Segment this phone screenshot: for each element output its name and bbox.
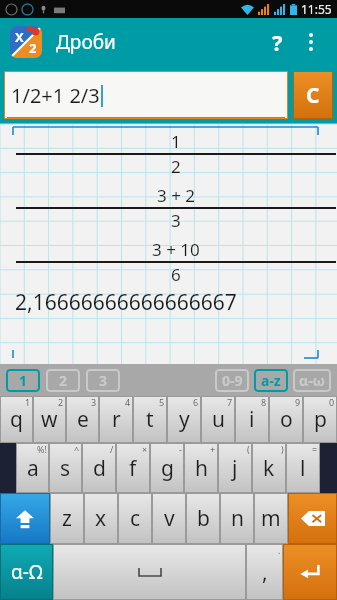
button[interactable]: y — [167, 396, 201, 443]
button[interactable]: f — [116, 443, 150, 493]
staticText: i — [249, 405, 255, 434]
staticText: ? — [272, 27, 283, 57]
button[interactable]: h — [184, 443, 218, 493]
staticText: m — [261, 504, 281, 533]
staticText: 8 — [261, 396, 267, 408]
button[interactable]: r — [99, 396, 133, 443]
staticText: c — [130, 504, 141, 533]
button[interactable]: w — [33, 396, 66, 443]
staticText: o — [280, 405, 293, 434]
staticText: s — [60, 454, 71, 483]
staticText: t — [146, 405, 154, 434]
button[interactable]: Help — [259, 24, 295, 60]
staticText: + — [210, 443, 216, 455]
staticText: w — [41, 405, 58, 434]
button[interactable]: s — [49, 443, 82, 493]
staticText: b — [197, 504, 210, 533]
button[interactable]: p — [303, 396, 337, 443]
button[interactable]: a — [16, 443, 49, 493]
button[interactable]: Backspace — [288, 493, 337, 544]
staticText: ) — [281, 443, 284, 455]
staticText: = — [312, 443, 318, 455]
staticText: 3 — [171, 209, 181, 232]
staticText: 11:55 — [301, 1, 332, 17]
button[interactable]: More options — [295, 26, 327, 58]
staticText: y — [179, 405, 190, 434]
button[interactable]: 3 — [86, 369, 120, 392]
button[interactable]: c — [118, 493, 152, 544]
button[interactable]: , — [246, 544, 283, 600]
button[interactable]: Space — [53, 544, 246, 600]
button[interactable]: 1 — [6, 369, 40, 392]
staticText: r — [112, 405, 121, 434]
staticText: 4 — [125, 396, 131, 408]
staticText: 2 — [58, 396, 64, 408]
staticText: p — [314, 405, 327, 434]
button[interactable]: e — [66, 396, 99, 443]
staticText: X — [15, 28, 24, 46]
staticText: . — [278, 544, 281, 556]
staticText: %! — [37, 443, 47, 455]
button[interactable]: 2 — [46, 369, 80, 392]
staticText: α-ω — [299, 371, 325, 390]
staticText: ^ — [74, 443, 80, 455]
staticText: α-Ω — [11, 559, 43, 585]
staticText: ( — [247, 443, 250, 455]
staticText: x — [95, 504, 107, 533]
button[interactable]: u — [201, 396, 235, 443]
staticText: v — [164, 504, 175, 533]
staticText: 2 — [29, 39, 37, 57]
staticText: 1/2+1 2/3 — [11, 82, 100, 109]
staticText: h — [195, 454, 208, 483]
button[interactable]: 0-9 — [215, 369, 249, 392]
button[interactable]: v — [152, 493, 186, 544]
staticText: 3 + 10 — [152, 238, 200, 261]
staticText: a-z — [261, 371, 281, 390]
button[interactable]: α-ω — [293, 369, 331, 392]
staticText: z — [62, 504, 72, 533]
button[interactable]: C — [293, 71, 333, 119]
staticText: k — [263, 454, 275, 483]
button[interactable]: Enter — [283, 544, 337, 600]
staticText: 2 — [171, 155, 181, 178]
button[interactable]: k — [252, 443, 286, 493]
staticText: 2 — [59, 371, 68, 390]
button[interactable]: b — [186, 493, 220, 544]
staticText: a — [27, 454, 39, 483]
button[interactable]: α-Ω — [0, 544, 53, 600]
staticText: 6 — [193, 396, 199, 408]
button[interactable]: i — [235, 396, 269, 443]
staticText: 1 — [171, 130, 181, 153]
staticText: g — [161, 454, 174, 483]
staticText: n — [231, 504, 244, 533]
staticText: 7 — [227, 396, 233, 408]
staticText: u — [212, 405, 225, 434]
staticText: 0-9 — [222, 371, 243, 390]
button[interactable]: q — [0, 396, 33, 443]
button[interactable]: n — [220, 493, 254, 544]
staticText: 2,16666666666666667 — [15, 288, 237, 317]
button[interactable]: o — [269, 396, 303, 443]
button[interactable]: z — [50, 493, 84, 544]
staticText: l — [300, 454, 306, 483]
staticText: C — [306, 81, 320, 110]
staticText: d — [93, 454, 106, 483]
button[interactable]: Shift — [0, 493, 50, 544]
button[interactable]: j — [218, 443, 252, 493]
staticText: 1 — [19, 371, 28, 390]
staticText: / — [110, 443, 114, 455]
button[interactable]: x — [84, 493, 118, 544]
button[interactable]: d — [82, 443, 116, 493]
staticText: 0 — [329, 396, 335, 408]
button[interactable]: g — [150, 443, 184, 493]
button[interactable]: m — [254, 493, 288, 544]
button[interactable]: t — [133, 396, 167, 443]
staticText: 3 + 2 — [157, 184, 196, 207]
staticText: 5 — [159, 396, 165, 408]
staticText: j — [232, 454, 238, 483]
staticText: 1 — [25, 396, 31, 408]
button[interactable]: l — [286, 443, 320, 493]
button[interactable]: a-z — [254, 369, 288, 392]
button[interactable]: 1/2+1 2/3 — [4, 71, 288, 119]
staticText: × — [142, 443, 148, 455]
